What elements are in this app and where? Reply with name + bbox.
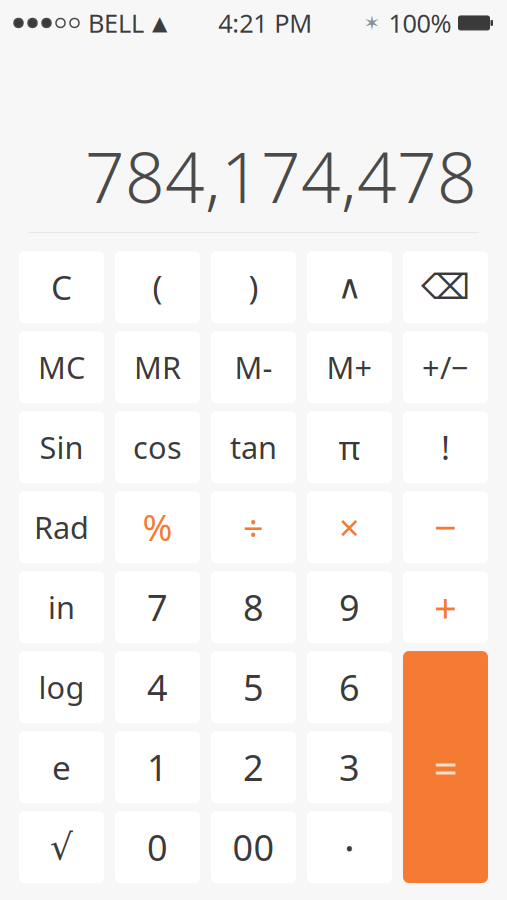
- button[interactable]: 6: [307, 651, 392, 723]
- staticText: 9: [339, 583, 360, 631]
- staticText: Rad: [34, 507, 89, 547]
- staticText: MR: [134, 347, 181, 387]
- staticText: Sin: [39, 427, 83, 467]
- button[interactable]: +: [403, 571, 488, 643]
- staticText: cos: [133, 427, 182, 467]
- staticText: e: [52, 745, 71, 789]
- button[interactable]: π: [307, 411, 392, 483]
- button[interactable]: cos: [115, 411, 200, 483]
- staticText: √: [50, 827, 73, 867]
- staticText: tan: [230, 427, 277, 467]
- staticText: log: [38, 667, 84, 707]
- button[interactable]: ): [211, 251, 296, 323]
- button[interactable]: 2: [211, 731, 296, 803]
- button[interactable]: Sin: [19, 411, 104, 483]
- button[interactable]: ÷: [211, 491, 296, 563]
- button[interactable]: ·: [307, 811, 392, 883]
- button[interactable]: +/−: [403, 331, 488, 403]
- staticText: %: [142, 503, 172, 551]
- button[interactable]: 9: [307, 571, 392, 643]
- button[interactable]: C: [19, 251, 104, 323]
- staticText: in: [48, 587, 75, 627]
- staticText: 5: [243, 663, 264, 711]
- button[interactable]: 4: [115, 651, 200, 723]
- button[interactable]: 3: [307, 731, 392, 803]
- button[interactable]: ×: [307, 491, 392, 563]
- staticText: +/−: [422, 347, 469, 387]
- button[interactable]: tan: [211, 411, 296, 483]
- staticText: ): [248, 265, 258, 309]
- button[interactable]: √: [19, 811, 104, 883]
- staticText: ×: [339, 503, 360, 551]
- staticText: ·: [344, 820, 355, 874]
- staticText: 1: [147, 743, 168, 791]
- staticText: ⌫: [421, 267, 470, 307]
- staticText: +: [434, 580, 457, 634]
- button[interactable]: 00: [211, 811, 296, 883]
- button[interactable]: log: [19, 651, 104, 723]
- button[interactable]: 8: [211, 571, 296, 643]
- staticText: =: [433, 739, 457, 795]
- button[interactable]: 7: [115, 571, 200, 643]
- button[interactable]: −: [403, 491, 488, 563]
- staticText: ▲: [152, 12, 167, 34]
- button[interactable]: 1: [115, 731, 200, 803]
- staticText: 7: [147, 583, 168, 631]
- button[interactable]: %: [115, 491, 200, 563]
- button[interactable]: 5: [211, 651, 296, 723]
- staticText: 100%: [388, 6, 451, 40]
- button[interactable]: =: [403, 651, 488, 883]
- staticText: 2: [243, 743, 264, 791]
- button[interactable]: MC: [19, 331, 104, 403]
- staticText: !: [441, 425, 450, 469]
- staticText: M+: [326, 347, 372, 387]
- staticText: 6: [339, 663, 360, 711]
- button[interactable]: Rad: [19, 491, 104, 563]
- staticText: 0: [147, 823, 168, 871]
- button[interactable]: in: [19, 571, 104, 643]
- staticText: 4:21 PM: [218, 6, 312, 40]
- button[interactable]: ∧: [307, 251, 392, 323]
- button[interactable]: MR: [115, 331, 200, 403]
- staticText: ∧: [337, 268, 361, 306]
- staticText: ✶: [363, 12, 380, 34]
- button[interactable]: M+: [307, 331, 392, 403]
- staticText: 8: [243, 583, 264, 631]
- staticText: C: [51, 265, 72, 309]
- button[interactable]: Backspace: [403, 251, 488, 323]
- button[interactable]: e: [19, 731, 104, 803]
- staticText: 00: [232, 823, 274, 871]
- staticText: (: [152, 265, 162, 309]
- staticText: M-: [234, 347, 272, 387]
- staticText: BELL: [88, 6, 144, 40]
- button[interactable]: (: [115, 251, 200, 323]
- staticText: 3: [339, 743, 360, 791]
- staticText: 784,174,478: [85, 130, 477, 222]
- button[interactable]: !: [403, 411, 488, 483]
- staticText: ÷: [243, 503, 264, 551]
- button[interactable]: M-: [211, 331, 296, 403]
- staticText: −: [434, 500, 457, 554]
- staticText: MC: [38, 347, 85, 387]
- button[interactable]: 0: [115, 811, 200, 883]
- staticText: π: [338, 425, 360, 469]
- staticText: 4: [147, 663, 168, 711]
